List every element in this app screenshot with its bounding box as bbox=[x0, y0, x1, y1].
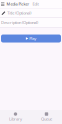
button[interactable]: Queue bbox=[31, 110, 62, 124]
button[interactable]: Play bbox=[1, 34, 61, 42]
staticText: Title (Optional) bbox=[7, 10, 31, 16]
button[interactable]: Library bbox=[0, 110, 31, 124]
staticText: Queue bbox=[41, 116, 52, 122]
staticText: Library bbox=[9, 116, 22, 122]
staticText: Media Picker bbox=[6, 1, 29, 7]
staticText: Edit bbox=[32, 1, 38, 7]
staticText: Play bbox=[29, 36, 36, 41]
staticText: Description (Optional) bbox=[1, 20, 38, 25]
